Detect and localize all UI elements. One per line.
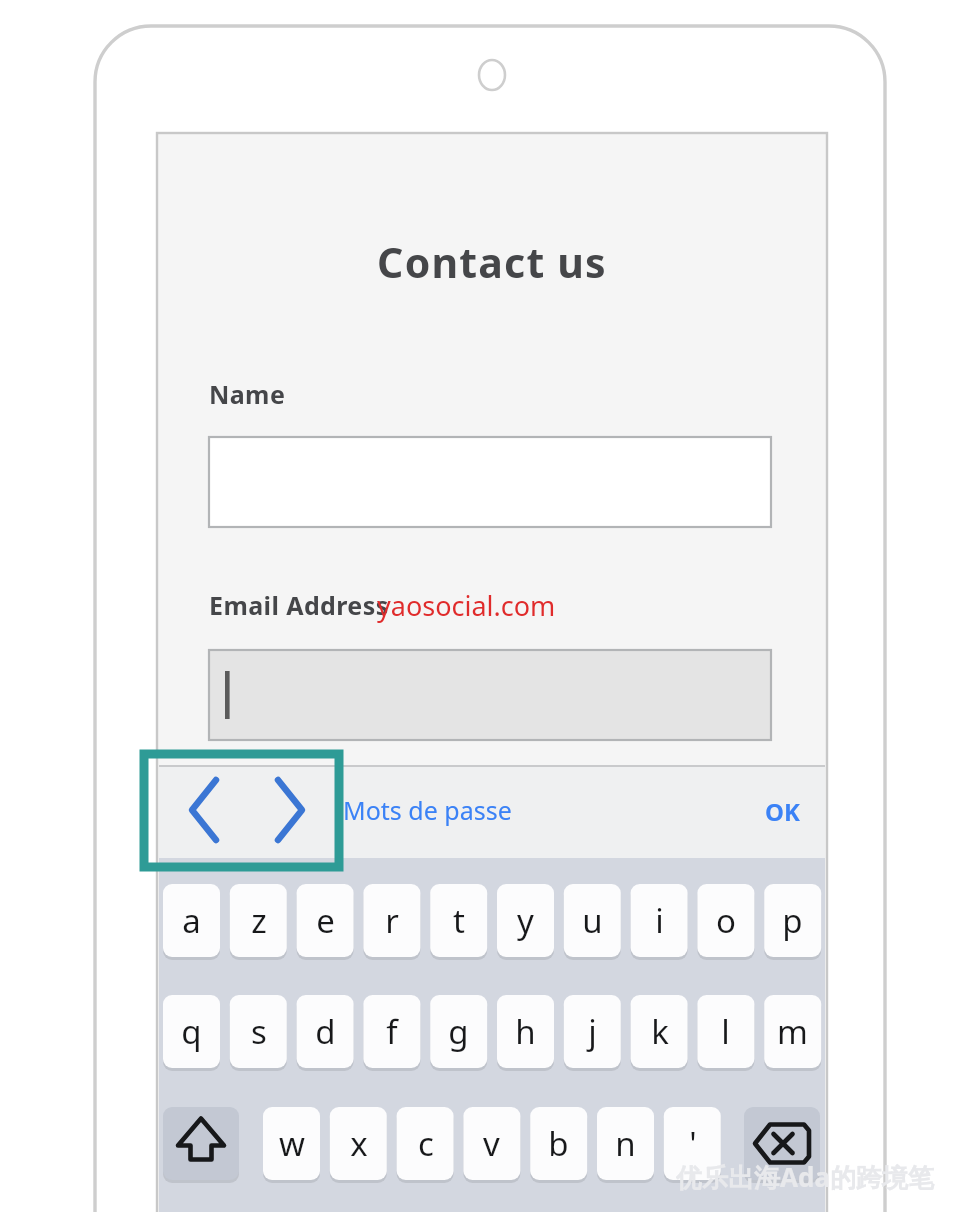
button[interactable]: u xyxy=(564,884,621,957)
button[interactable]: Previous field xyxy=(170,772,238,848)
staticText: f xyxy=(386,1009,398,1054)
staticText: i xyxy=(655,898,664,943)
button[interactable]: t xyxy=(430,884,487,957)
staticText: c xyxy=(418,1121,434,1166)
button[interactable]: d xyxy=(297,995,354,1068)
button[interactable]: Backspace xyxy=(744,1107,820,1180)
staticText: r xyxy=(385,898,399,943)
button[interactable]: k xyxy=(631,995,688,1068)
button[interactable]: w xyxy=(263,1107,320,1180)
staticText: v xyxy=(483,1121,500,1166)
staticText: yaosocial.com xyxy=(377,587,717,627)
button[interactable]: OK xyxy=(765,795,825,833)
button[interactable]: r xyxy=(363,884,420,957)
staticText: Email Address xyxy=(209,588,629,628)
button[interactable]: g xyxy=(430,995,487,1068)
button[interactable]: q xyxy=(163,995,220,1068)
staticText: h xyxy=(515,1009,536,1054)
button[interactable]: Mots de passe xyxy=(343,793,633,833)
staticText: ' xyxy=(689,1121,697,1166)
button[interactable]: f xyxy=(363,995,420,1068)
staticText: u xyxy=(582,898,603,943)
staticText: w xyxy=(279,1121,305,1166)
staticText: Name xyxy=(209,377,509,417)
staticText: 优乐出海Ada的跨境笔记 xyxy=(676,1159,956,1199)
staticText: z xyxy=(251,898,267,943)
button[interactable]: o xyxy=(697,884,754,957)
button[interactable]: x xyxy=(330,1107,387,1180)
button[interactable]: i xyxy=(631,884,688,957)
staticText: o xyxy=(716,898,736,943)
button[interactable]: n xyxy=(597,1107,654,1180)
staticText: m xyxy=(777,1009,808,1054)
button[interactable]: h xyxy=(497,995,554,1068)
staticText: j xyxy=(588,1009,597,1054)
button[interactable]: Next field xyxy=(256,772,324,848)
button[interactable]: l xyxy=(697,995,754,1068)
button[interactable]: ' xyxy=(664,1107,721,1180)
button[interactable]: p xyxy=(764,884,821,957)
button[interactable]: m xyxy=(764,995,821,1068)
staticText: t xyxy=(453,898,465,943)
staticText: b xyxy=(548,1121,569,1166)
staticText: Mots de passe xyxy=(343,793,633,833)
button[interactable]: a xyxy=(163,884,220,957)
staticText: OK xyxy=(765,795,825,833)
button[interactable]: c xyxy=(397,1107,454,1180)
button[interactable]: z xyxy=(230,884,287,957)
staticText: y xyxy=(517,898,534,943)
staticText: q xyxy=(181,1009,202,1054)
button[interactable] xyxy=(209,650,771,740)
button[interactable]: y xyxy=(497,884,554,957)
staticText: l xyxy=(721,1009,730,1054)
button[interactable]: s xyxy=(230,995,287,1068)
button[interactable] xyxy=(209,437,771,527)
staticText: s xyxy=(251,1009,267,1054)
staticText: p xyxy=(782,898,803,943)
staticText: a xyxy=(182,898,201,943)
staticText: e xyxy=(316,898,335,943)
staticText: d xyxy=(315,1009,336,1054)
staticText: g xyxy=(448,1009,469,1054)
button[interactable]: b xyxy=(530,1107,587,1180)
button[interactable]: Shift xyxy=(163,1107,239,1180)
staticText: k xyxy=(651,1009,669,1054)
button[interactable]: v xyxy=(463,1107,520,1180)
staticText: n xyxy=(615,1121,636,1166)
staticText: Contact us xyxy=(157,234,827,290)
button[interactable]: e xyxy=(297,884,354,957)
staticText: x xyxy=(350,1121,368,1166)
button[interactable]: j xyxy=(564,995,621,1068)
